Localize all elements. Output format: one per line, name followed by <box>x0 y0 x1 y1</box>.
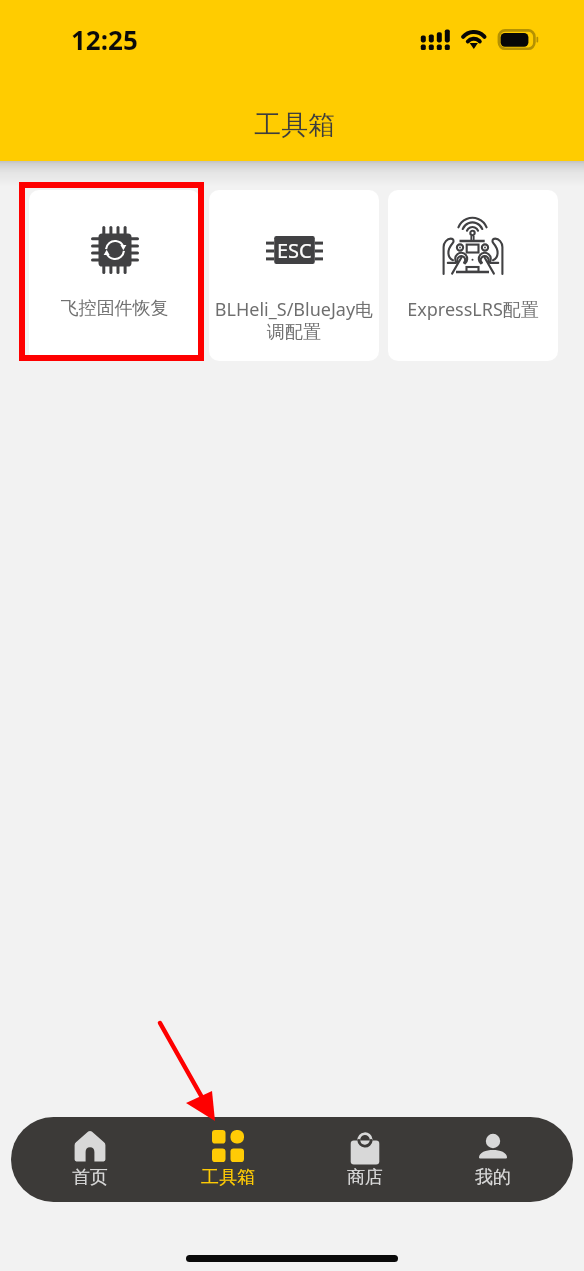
button[interactable]: Home <box>57 1117 123 1202</box>
button[interactable]: 飞控固件恢复 <box>29 190 200 361</box>
staticText: 工具箱 <box>254 108 335 142</box>
button[interactable]: ExpressLRS配置 <box>388 190 558 361</box>
staticText: 12:25 <box>71 22 138 57</box>
button[interactable]: ESC <box>209 190 379 361</box>
button[interactable]: Toolbox <box>195 1117 261 1202</box>
staticText: ExpressLRS配置 <box>389 297 557 322</box>
staticText: 我的 <box>475 1166 511 1189</box>
staticText: 飞控固件恢复 <box>30 297 199 320</box>
button[interactable]: Profile <box>460 1117 526 1202</box>
button[interactable]: Store <box>332 1117 398 1202</box>
staticText: BLHeli_S/BlueJay电 调配置 <box>210 297 378 344</box>
staticText: 首页 <box>72 1166 108 1189</box>
staticText: 商店 <box>347 1166 383 1189</box>
staticText: ESC <box>277 237 312 264</box>
staticText: 工具箱 <box>201 1166 255 1189</box>
